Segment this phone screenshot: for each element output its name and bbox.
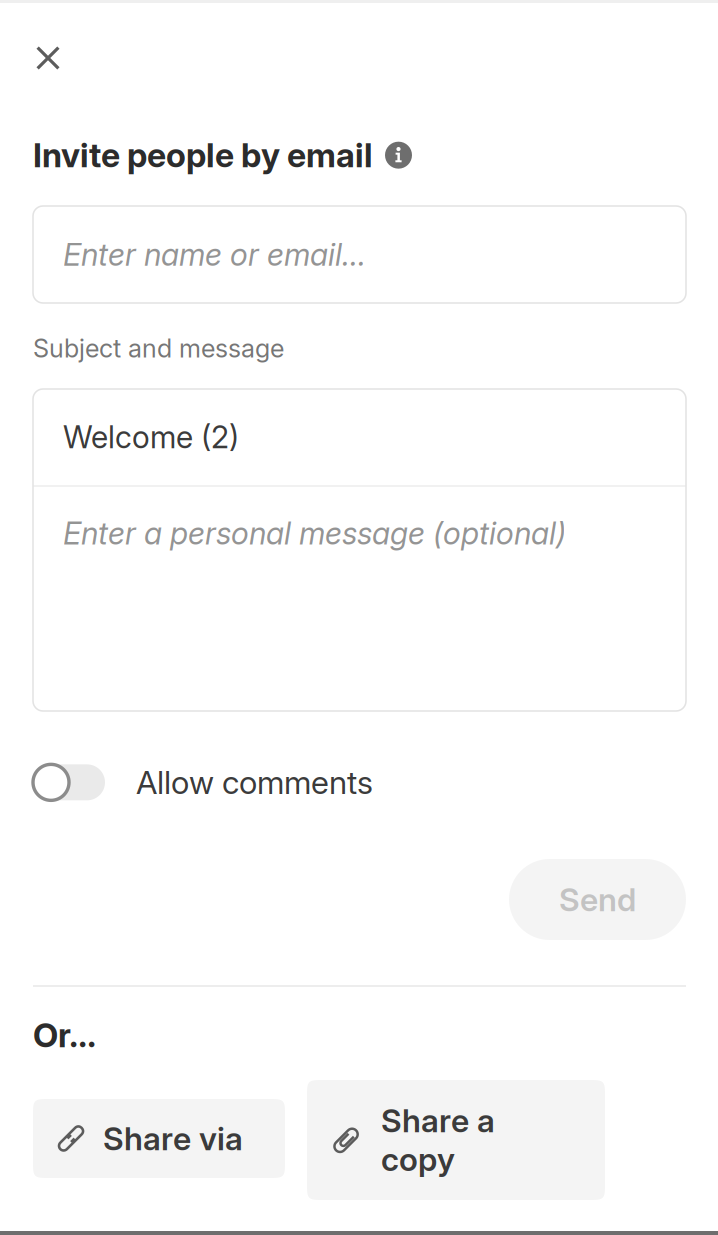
staticText: Send bbox=[559, 880, 636, 919]
staticText: Subject and message bbox=[33, 333, 284, 364]
staticText: Enter a personal message (optional) bbox=[63, 515, 566, 552]
staticText: Or... bbox=[33, 1015, 96, 1055]
staticText: Share via bbox=[103, 1119, 243, 1158]
button[interactable]: Enter name or email... bbox=[33, 206, 686, 303]
button[interactable]: Enter a personal message (optional) bbox=[33, 487, 686, 711]
staticText: Welcome (2) bbox=[63, 419, 239, 456]
button[interactable]: Share via bbox=[33, 1099, 285, 1178]
staticText: Enter name or email... bbox=[63, 236, 366, 273]
button[interactable]: About inviting people by email bbox=[385, 142, 412, 169]
button[interactable]: Send bbox=[509, 859, 686, 940]
staticText: Allow comments bbox=[136, 763, 373, 802]
button[interactable]: Close bbox=[24, 34, 72, 82]
staticText: Invite people by email bbox=[33, 135, 373, 175]
button[interactable]: Welcome (2) bbox=[33, 389, 686, 485]
staticText: Share a copy bbox=[381, 1101, 495, 1179]
button[interactable]: Allow comments bbox=[33, 763, 373, 802]
button[interactable]: Share a copy bbox=[307, 1080, 605, 1200]
